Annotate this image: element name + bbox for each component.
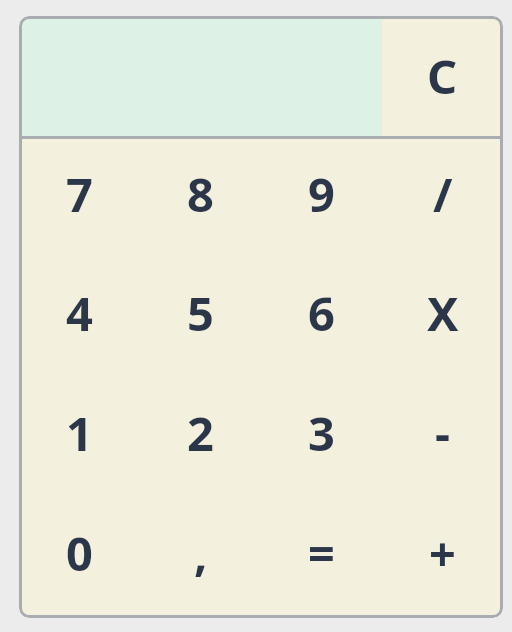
button[interactable]: 8 — [140, 139, 261, 258]
staticText: 6 — [308, 281, 335, 345]
button[interactable]: 6 — [261, 258, 382, 378]
staticText: 5 — [187, 281, 214, 345]
button[interactable]: C — [382, 16, 503, 136]
staticText: = — [308, 521, 335, 585]
staticText: 8 — [187, 162, 214, 226]
button[interactable]: 0 — [19, 498, 140, 618]
button[interactable]: 7 — [19, 139, 140, 258]
staticText: + — [429, 521, 456, 585]
button[interactable]: / — [382, 139, 503, 258]
button[interactable]: + — [382, 498, 503, 618]
staticText: 2 — [187, 401, 214, 465]
button[interactable]: , — [140, 498, 261, 618]
staticText: 3 — [308, 401, 335, 465]
staticText: X — [427, 281, 459, 345]
button[interactable]: 1 — [19, 378, 140, 498]
staticText: 7 — [66, 162, 93, 226]
staticText: 1 — [66, 401, 93, 465]
staticText: / — [433, 162, 453, 226]
staticText: 4 — [66, 281, 93, 345]
staticText: 0 — [66, 521, 93, 585]
staticText: - — [435, 401, 451, 465]
button[interactable]: 2 — [140, 378, 261, 498]
staticText: 9 — [308, 162, 335, 226]
staticText: C — [427, 44, 458, 108]
button[interactable]: 5 — [140, 258, 261, 378]
button[interactable]: = — [261, 498, 382, 618]
button[interactable]: - — [382, 378, 503, 498]
button[interactable]: 3 — [261, 378, 382, 498]
button[interactable]: X — [382, 258, 503, 378]
button[interactable]: 9 — [261, 139, 382, 258]
staticText: , — [194, 521, 208, 585]
button[interactable]: 4 — [19, 258, 140, 378]
